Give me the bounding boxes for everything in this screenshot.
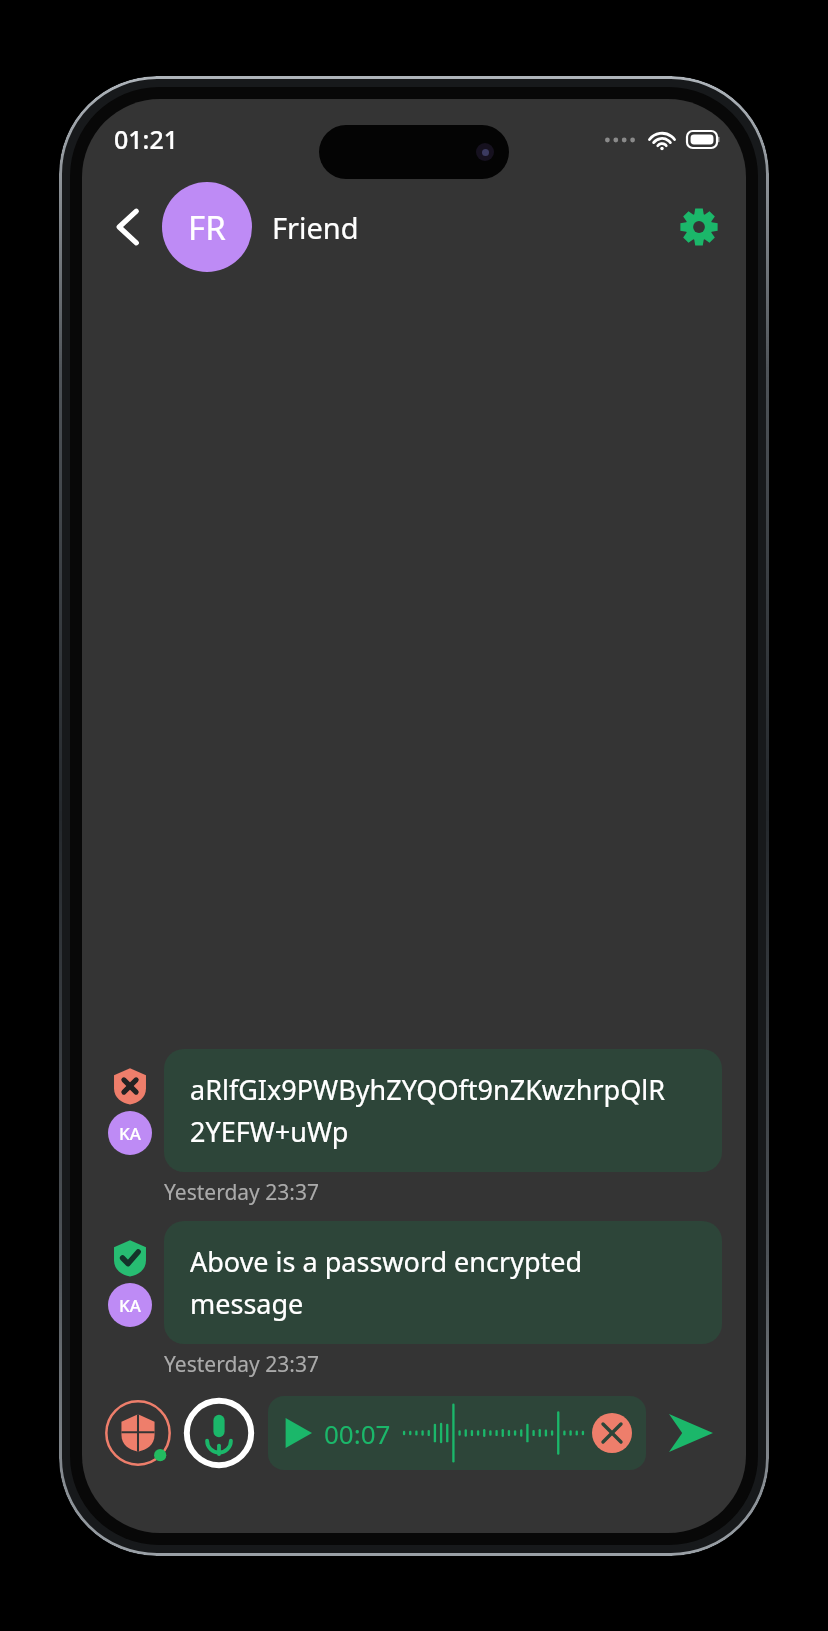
button[interactable]: Record voice message [182, 1396, 256, 1470]
staticText: Yesterday 23:37 [164, 1178, 319, 1207]
staticText: Above is a password encrypted message [190, 1243, 583, 1322]
button[interactable]: 00:07 [268, 1396, 646, 1470]
button[interactable]: FR [162, 182, 670, 272]
button[interactable]: Send [656, 1398, 726, 1468]
button[interactable]: aRlfGIx9PWByhZYQOft9nZKwzhrpQlR 2YEFW+uW… [164, 1049, 722, 1172]
button[interactable]: Encryption [100, 1395, 176, 1471]
staticText: 01:21 [114, 122, 179, 156]
button[interactable]: Settings [670, 198, 728, 256]
button[interactable]: Delete recording [592, 1413, 632, 1453]
staticText: 00:07 [324, 1416, 391, 1451]
staticText: aRlfGIx9PWByhZYQOft9nZKwzhrpQlR 2YEFW+uW… [190, 1071, 666, 1150]
button[interactable]: Above is a password encrypted message [164, 1221, 722, 1344]
staticText: Yesterday 23:37 [164, 1350, 319, 1379]
staticText: Friend [272, 208, 359, 247]
staticText: KA [119, 1122, 141, 1145]
staticText: FR [188, 205, 226, 250]
button[interactable]: Back [100, 199, 156, 255]
staticText: KA [119, 1294, 141, 1317]
